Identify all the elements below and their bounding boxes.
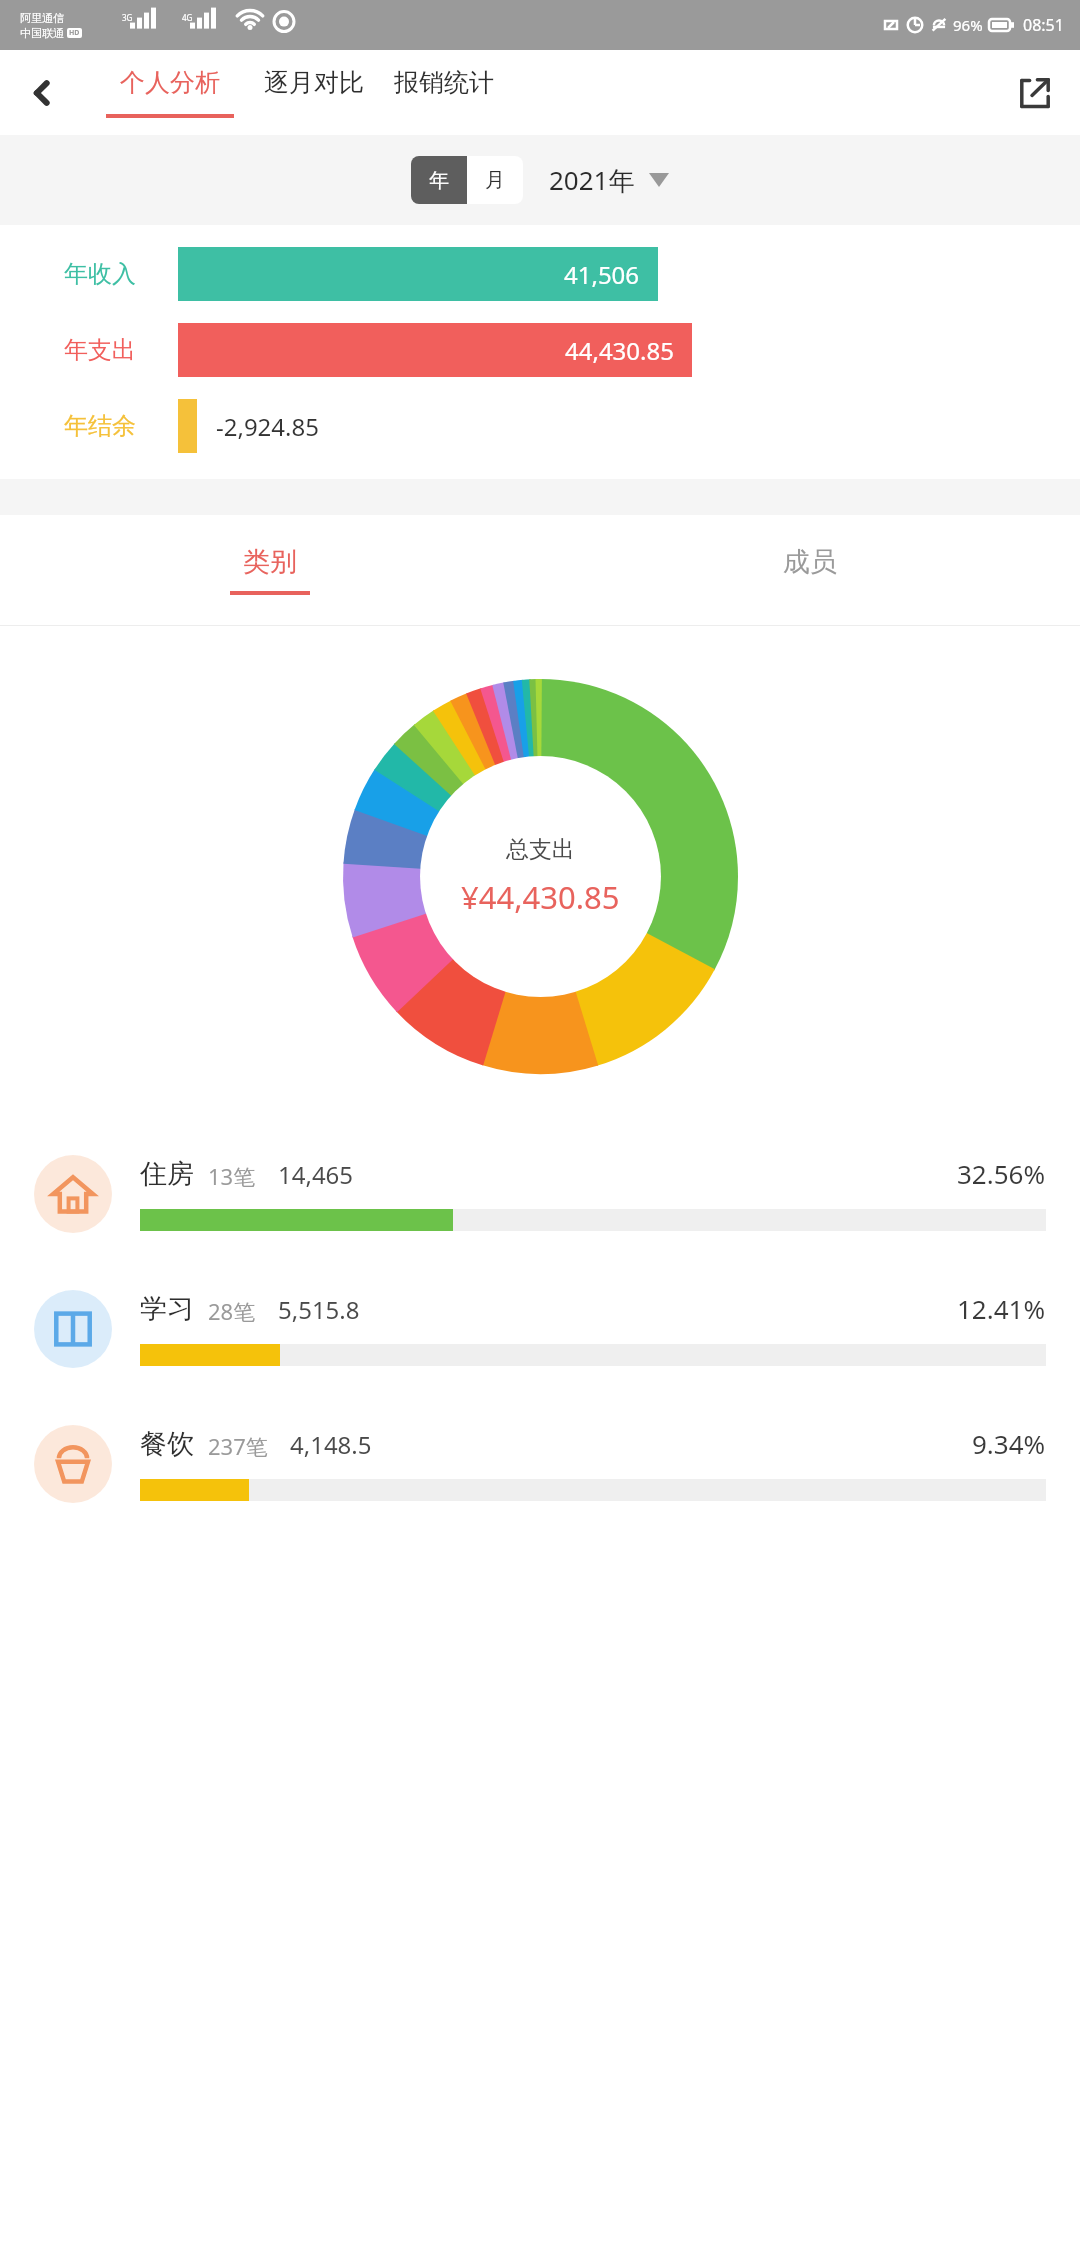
button[interactable]: 个人分析 xyxy=(96,67,244,118)
button[interactable]: 餐饮 xyxy=(0,1396,1080,1531)
staticText: 年 xyxy=(429,168,449,193)
staticText: 个人分析 xyxy=(120,67,220,98)
button[interactable]: Share xyxy=(1008,66,1062,120)
staticText: 类别 xyxy=(243,545,297,579)
button[interactable]: 类别 xyxy=(0,515,540,625)
button[interactable]: 年 xyxy=(411,156,467,204)
staticText: 住房 xyxy=(140,1157,194,1191)
staticText: 44,430.85 xyxy=(565,334,674,367)
staticText: 28笔 xyxy=(208,1296,256,1326)
staticText: -2,924.85 xyxy=(216,410,319,443)
staticText: 08:51 xyxy=(1023,14,1064,36)
staticText: 2021年 xyxy=(549,162,635,198)
staticText: HD xyxy=(69,28,80,38)
staticText: ¥44,430.85 xyxy=(461,876,620,918)
button[interactable]: 月 xyxy=(467,156,523,204)
staticText: 237笔 xyxy=(208,1431,268,1461)
staticText: 总支出 xyxy=(506,835,575,864)
button[interactable]: 报销统计 xyxy=(384,67,504,118)
staticText: 96% xyxy=(953,15,983,35)
staticText: 逐月对比 xyxy=(264,67,364,98)
staticText: 13笔 xyxy=(208,1161,256,1191)
staticText: 9.34% xyxy=(972,1426,1046,1461)
staticText: 年收入 xyxy=(64,259,136,289)
button[interactable]: 住房 xyxy=(0,1126,1080,1261)
staticText: 14,465 xyxy=(278,1158,354,1191)
staticText: 12.41% xyxy=(957,1291,1046,1326)
staticText: 中国联通 xyxy=(20,26,64,40)
staticText: 成员 xyxy=(783,545,837,579)
staticText: 月 xyxy=(485,168,505,193)
staticText: 4,148.5 xyxy=(290,1428,372,1461)
staticText: 餐饮 xyxy=(140,1427,194,1461)
staticText: 年结余 xyxy=(64,411,136,441)
staticText: 年支出 xyxy=(64,335,136,365)
staticText: 5,515.8 xyxy=(278,1293,360,1326)
button[interactable]: 学习 xyxy=(0,1261,1080,1396)
staticText: 阿里通信 xyxy=(20,11,64,25)
staticText: 3G xyxy=(122,12,133,23)
staticText: 32.56% xyxy=(957,1156,1046,1191)
button[interactable]: 逐月对比 xyxy=(254,67,374,118)
staticText: 4G xyxy=(182,12,193,23)
button[interactable]: 成员 xyxy=(540,515,1080,625)
staticText: 报销统计 xyxy=(394,67,494,98)
button[interactable]: 2021年 xyxy=(549,162,669,198)
button[interactable]: Back xyxy=(14,65,70,121)
staticText: 学习 xyxy=(140,1292,194,1326)
staticText: 41,506 xyxy=(564,258,640,291)
